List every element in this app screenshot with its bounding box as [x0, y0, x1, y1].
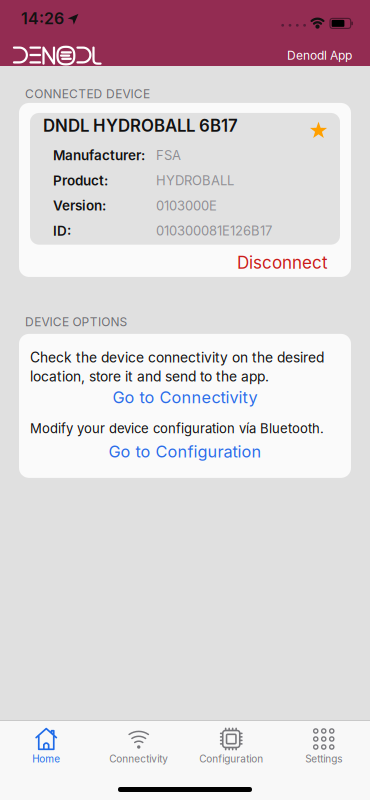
- staticText: Modify your device configuration vía Blu…: [30, 421, 324, 436]
- staticText: 14:26: [21, 9, 64, 28]
- button[interactable]: Disconnect: [237, 253, 328, 272]
- staticText: DEVICE OPTIONS: [25, 315, 128, 329]
- staticText: CONNECTED DEVICE: [25, 87, 150, 101]
- staticText: Denodl App: [287, 48, 352, 62]
- staticText: 010300081E126B17: [156, 223, 272, 238]
- staticText: ID:: [53, 223, 71, 239]
- staticText: Disconnect: [237, 253, 328, 272]
- button[interactable]: Go to Configuration: [108, 442, 261, 461]
- button[interactable]: Home: [0, 727, 92, 765]
- staticText: Product:: [53, 173, 108, 188]
- staticText: DNDL HYDROBALL 6B17: [43, 116, 238, 135]
- button[interactable]: Connectivity: [92, 727, 185, 765]
- staticText: Go to Connectivity: [112, 388, 257, 407]
- staticText: Check the device connectivity on the des…: [30, 348, 324, 386]
- staticText: Manufacturer:: [53, 147, 145, 163]
- staticText: Configuration: [199, 753, 263, 765]
- staticText: Home: [32, 753, 60, 765]
- staticText: Connectivity: [109, 753, 168, 765]
- staticText: FSA: [156, 148, 181, 163]
- staticText: Settings: [305, 753, 342, 765]
- staticText: 0103000E: [156, 198, 217, 213]
- button[interactable]: Settings: [277, 727, 370, 765]
- button[interactable]: Configuration: [185, 727, 277, 765]
- staticText: Version:: [53, 198, 106, 213]
- button[interactable]: Favorite: [309, 117, 328, 135]
- staticText: HYDROBALL: [156, 173, 234, 188]
- staticText: Go to Configuration: [108, 442, 261, 461]
- button[interactable]: Go to Connectivity: [112, 388, 257, 407]
